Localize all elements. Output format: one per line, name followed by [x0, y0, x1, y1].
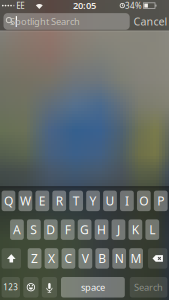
staticText: Q [4, 193, 13, 209]
button[interactable]: K [128, 219, 142, 240]
staticText: 34% [125, 0, 142, 11]
button[interactable]: T [69, 191, 83, 211]
button[interactable]: Delete [148, 248, 167, 269]
button[interactable]: Dictation [42, 277, 57, 297]
button[interactable]: Z [28, 248, 41, 269]
staticText: X [48, 250, 55, 266]
button[interactable]: Q [2, 191, 15, 211]
staticText: L [149, 222, 155, 238]
button[interactable]: A [10, 219, 24, 240]
staticText: Search [134, 281, 163, 293]
button[interactable]: O [137, 191, 151, 211]
button[interactable]: S [27, 219, 41, 240]
button[interactable]: W [18, 191, 32, 211]
button[interactable]: V [78, 248, 92, 269]
button[interactable]: Emoji [23, 277, 38, 297]
button[interactable]: N [112, 248, 126, 269]
button[interactable]: M [129, 248, 143, 269]
button[interactable]: D [44, 219, 58, 240]
staticText: Cancel [133, 14, 167, 29]
button[interactable]: H [95, 219, 108, 240]
staticText: F [65, 222, 71, 238]
staticText: T [73, 193, 80, 209]
button[interactable]: Cancel [132, 13, 168, 30]
button[interactable]: C [62, 248, 75, 269]
button[interactable]: Shift [2, 248, 21, 269]
staticText: O [139, 193, 148, 209]
button[interactable]: J [112, 219, 125, 240]
staticText: R [56, 193, 63, 209]
button[interactable]: U [103, 191, 117, 211]
button[interactable]: 123 [2, 277, 20, 297]
staticText: M [131, 250, 142, 266]
staticText: G [80, 222, 89, 238]
staticText: A [13, 222, 21, 238]
staticText: P [157, 193, 164, 209]
staticText: D [46, 222, 55, 238]
staticText: space [81, 281, 105, 293]
staticText: K [132, 222, 139, 238]
staticText: V [82, 250, 89, 266]
button[interactable]: Y [86, 191, 100, 211]
button[interactable]: F [61, 219, 74, 240]
button[interactable]: I [120, 191, 134, 211]
button[interactable]: R [52, 191, 66, 211]
staticText: J [117, 222, 120, 238]
button[interactable]: P [154, 191, 168, 211]
button[interactable]: Spotlight Search [3, 13, 130, 30]
staticText: W [20, 193, 31, 209]
button[interactable]: B [95, 248, 109, 269]
staticText: C [64, 250, 72, 266]
staticText: B [98, 250, 106, 266]
button[interactable]: X [45, 248, 58, 269]
staticText: E [39, 193, 46, 209]
staticText: 20:05 [73, 0, 96, 12]
button[interactable]: space [61, 277, 125, 297]
staticText: EE [16, 0, 24, 11]
staticText: I [125, 193, 129, 209]
staticText: Y [90, 193, 97, 209]
staticText: Spotlight Search [10, 15, 80, 28]
staticText: N [115, 250, 124, 266]
staticText: S [30, 222, 37, 238]
staticText: 123 [3, 282, 18, 292]
staticText: Z [31, 250, 38, 266]
staticText: H [97, 222, 106, 238]
button[interactable]: E [35, 191, 49, 211]
button[interactable]: L [145, 219, 159, 240]
staticText: U [105, 193, 114, 209]
button[interactable]: Search [130, 277, 167, 297]
button[interactable]: G [78, 219, 91, 240]
